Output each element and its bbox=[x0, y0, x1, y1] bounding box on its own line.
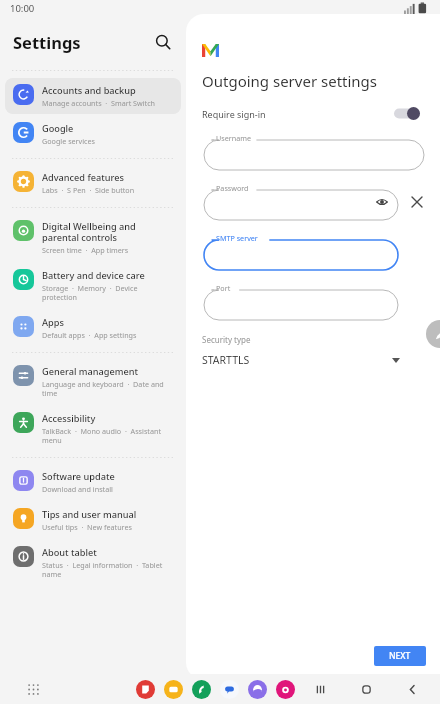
staticText: Default apps · App settings bbox=[42, 330, 137, 340]
staticText: Security type bbox=[202, 334, 251, 345]
staticText: Settings bbox=[13, 31, 81, 53]
button[interactable]: Samsung Notes bbox=[136, 680, 155, 699]
staticText: Software update bbox=[42, 470, 115, 483]
staticText: Download and install bbox=[42, 484, 113, 494]
staticText: Accounts and backup bbox=[42, 84, 136, 97]
button[interactable]: NEXT bbox=[374, 646, 426, 666]
button[interactable]: Google bbox=[5, 116, 181, 152]
button[interactable]: Phone bbox=[192, 680, 211, 699]
button[interactable]: Apps bbox=[5, 310, 181, 346]
staticText: STARTTLS bbox=[202, 353, 250, 367]
staticText: SMTP server bbox=[216, 233, 258, 243]
staticText: Accessibility bbox=[42, 412, 96, 425]
button[interactable]: Security type bbox=[202, 334, 426, 367]
staticText: Tips and user manual bbox=[42, 508, 137, 521]
button[interactable]: SMTP server bbox=[202, 234, 400, 270]
button[interactable]: Accessibility bbox=[5, 406, 181, 451]
button[interactable]: Messages bbox=[220, 680, 239, 699]
button[interactable]: Back bbox=[402, 679, 422, 699]
staticText: Password bbox=[216, 183, 249, 193]
staticText: TalkBack · Mono audio · Assistant menu bbox=[42, 426, 173, 445]
button[interactable]: Tips and user manual bbox=[5, 502, 181, 538]
button[interactable]: Internet bbox=[248, 680, 267, 699]
staticText: NEXT bbox=[389, 650, 411, 662]
button[interactable]: Recents bbox=[310, 679, 330, 699]
staticText: Outgoing server settings bbox=[202, 71, 378, 91]
staticText: Google bbox=[42, 122, 74, 135]
button[interactable]: Digital Wellbeing and parental controls bbox=[5, 214, 181, 261]
staticText: Language and keyboard · Date and time bbox=[42, 379, 173, 398]
staticText: 10:00 bbox=[10, 2, 35, 15]
button[interactable]: Battery and device care bbox=[5, 263, 181, 308]
staticText: Status · Legal information · Tablet name bbox=[42, 560, 173, 579]
staticText: Battery and device care bbox=[42, 269, 145, 282]
staticText: Digital Wellbeing and parental controls bbox=[42, 220, 173, 244]
button[interactable]: Advanced features bbox=[5, 165, 181, 201]
button[interactable]: General management bbox=[5, 359, 181, 404]
button[interactable]: Username bbox=[202, 134, 426, 170]
button[interactable]: Home bbox=[356, 679, 376, 699]
button[interactable]: Search bbox=[150, 29, 176, 55]
staticText: Username bbox=[216, 133, 251, 143]
button[interactable]: Software update bbox=[5, 464, 181, 500]
staticText: Labs · S Pen · Side button bbox=[42, 185, 135, 195]
button[interactable]: About tablet bbox=[5, 540, 181, 585]
staticText: Screen time · App timers bbox=[42, 245, 129, 255]
staticText: Port bbox=[216, 283, 231, 293]
staticText: Require sign-in bbox=[202, 108, 266, 120]
staticText: Storage · Memory · Device protection bbox=[42, 283, 173, 302]
button[interactable]: Camera bbox=[276, 680, 295, 699]
button[interactable]: Apps bbox=[22, 678, 44, 700]
button[interactable]: Show password bbox=[374, 194, 390, 210]
staticText: General management bbox=[42, 365, 139, 378]
button[interactable]: Accounts and backup bbox=[5, 78, 181, 114]
staticText: Useful tips · New features bbox=[42, 522, 132, 532]
button[interactable]: Require sign-in bbox=[202, 107, 426, 120]
button[interactable] bbox=[394, 107, 420, 120]
staticText: Google services bbox=[42, 136, 96, 146]
staticText: About tablet bbox=[42, 546, 97, 559]
button[interactable]: Port bbox=[202, 284, 400, 320]
button[interactable]: My Files bbox=[164, 680, 183, 699]
button[interactable]: Password bbox=[202, 184, 400, 220]
staticText: Manage accounts · Smart Switch bbox=[42, 98, 156, 108]
button[interactable]: Edit bbox=[426, 320, 440, 348]
staticText: Advanced features bbox=[42, 171, 124, 184]
staticText: Apps bbox=[42, 316, 64, 329]
button[interactable]: Clear password bbox=[408, 193, 426, 211]
